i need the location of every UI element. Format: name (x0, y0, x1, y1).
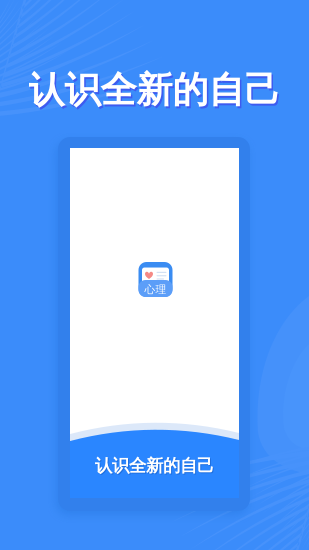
staticText: 认识全新的自己 (28, 68, 280, 112)
staticText: 认识全新的自己 (95, 455, 214, 476)
staticText: 认识全新的自己 (30, 70, 282, 114)
staticText: 认识全新的自己 (96, 456, 215, 477)
staticText: 心理 (144, 283, 166, 296)
